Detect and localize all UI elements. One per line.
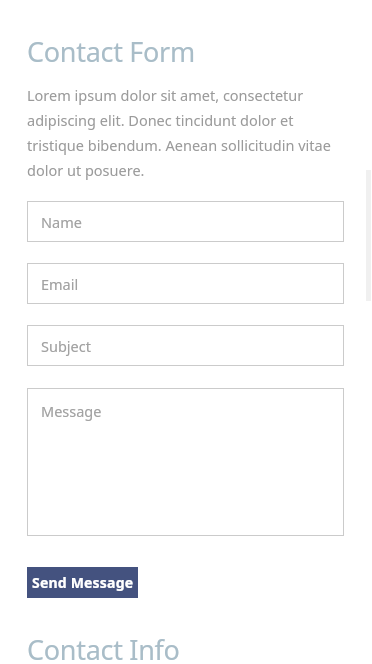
staticText: Name bbox=[41, 212, 82, 232]
staticText: Lorem ipsum dolor sit amet, consectetur … bbox=[27, 85, 344, 180]
button[interactable]: Name bbox=[27, 201, 344, 242]
staticText: Contact Form bbox=[27, 33, 195, 70]
staticText: Message bbox=[41, 401, 102, 421]
staticText: Email bbox=[41, 274, 79, 294]
staticText: Send Message bbox=[32, 573, 134, 592]
button[interactable]: Email bbox=[27, 263, 344, 304]
button[interactable]: Subject bbox=[27, 325, 344, 366]
staticText: Contact Info bbox=[27, 631, 180, 664]
button[interactable]: Send Message bbox=[27, 567, 138, 598]
staticText: Subject bbox=[41, 336, 91, 356]
button[interactable]: Message bbox=[27, 388, 344, 536]
